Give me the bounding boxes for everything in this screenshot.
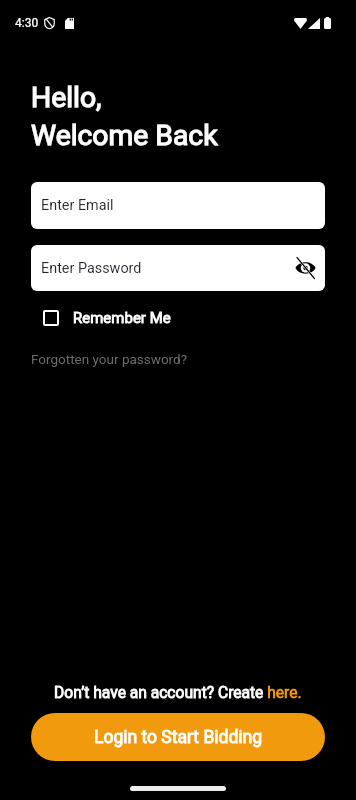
button[interactable]: Enter Password xyxy=(31,245,325,291)
staticText: Enter Email xyxy=(41,197,114,214)
staticText: Enter Password xyxy=(41,260,142,277)
staticText: Login to Start Bidding xyxy=(94,727,263,748)
button[interactable]: Remember Me xyxy=(43,309,171,327)
staticText: 4:30 xyxy=(15,16,39,30)
staticText: Remember Me xyxy=(73,309,171,327)
staticText: Hello, xyxy=(31,81,102,114)
button[interactable]: Show password xyxy=(293,256,317,280)
button[interactable]: Login to Start Bidding xyxy=(31,713,325,761)
staticText: Don’t have an account? Create here. xyxy=(54,684,302,702)
button[interactable]: Enter Email xyxy=(31,182,325,229)
button[interactable]: Forgotten your password? xyxy=(31,351,188,367)
staticText: Welcome Back xyxy=(31,119,218,152)
button[interactable]: Don’t have an account? Create here. xyxy=(54,684,302,702)
staticText: Forgotten your password? xyxy=(31,351,188,367)
